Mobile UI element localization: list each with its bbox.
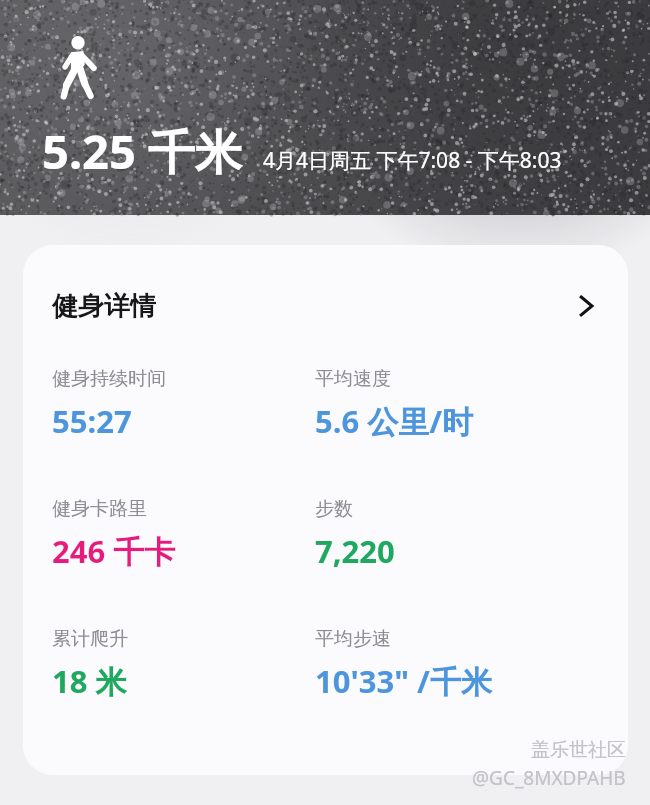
staticText: 步数: [315, 497, 353, 521]
staticText: 246 千卡: [52, 530, 176, 572]
staticText: 健身详情: [52, 290, 156, 323]
staticText: 平均速度: [315, 367, 391, 391]
staticText: 盖乐世社区: [531, 738, 626, 762]
staticText: 平均步速: [315, 627, 391, 651]
staticText: 18 米: [52, 660, 127, 702]
staticText: 4月4日周五 下午7:08 - 下午8:03: [263, 146, 562, 175]
staticText: 55:27: [52, 400, 132, 442]
other: 步行: [57, 35, 99, 99]
staticText: 健身卡路里: [52, 497, 147, 521]
staticText: 5.6 公里/时: [315, 400, 474, 442]
staticText: 10'33" /千米: [315, 660, 492, 702]
staticText: 累计爬升: [52, 627, 128, 651]
staticText: 7,220: [315, 530, 395, 572]
staticText: 5.25 千米: [42, 119, 243, 183]
button[interactable]: 健身卡路里: [23, 497, 628, 572]
staticText: @GC_8MXDPAHB: [472, 765, 626, 791]
button[interactable]: 健身详情: [23, 245, 628, 367]
button[interactable]: 累计爬升: [23, 627, 628, 702]
button[interactable]: 健身持续时间: [23, 367, 628, 442]
staticText: 健身持续时间: [52, 367, 166, 391]
other: 查看健身详情: [571, 291, 601, 321]
